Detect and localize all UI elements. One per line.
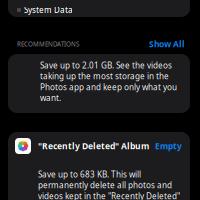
button[interactable]: Show All [149,38,185,50]
staticText: System Data [24,5,73,15]
staticText: Show All [149,38,185,50]
button[interactable]: "Recently Deleted" Album [8,132,190,200]
staticText: Save up to 2.01 GB. See the videos takin… [40,60,177,103]
staticText: "Recently Deleted" Album [38,140,149,152]
staticText: Save up to 683 KB. This will permanently… [38,169,180,200]
staticText: Empty [155,140,182,152]
button[interactable]: System Data [8,0,190,17]
staticText: RECOMMENDATIONS [17,40,79,48]
button[interactable]: Save up to 2.01 GB. See the videos takin… [8,54,190,113]
